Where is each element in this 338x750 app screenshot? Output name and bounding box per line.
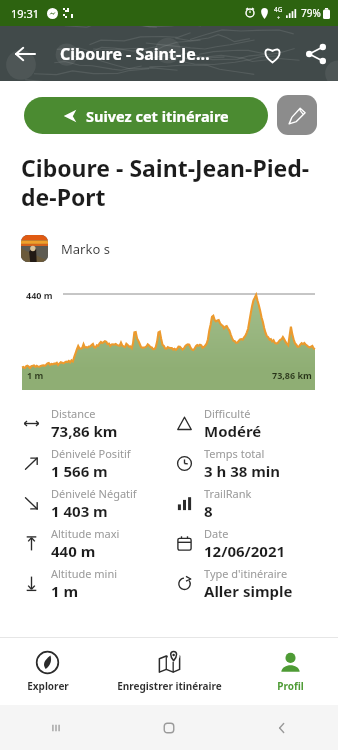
staticText: 1 m — [51, 581, 79, 601]
staticText: Marko s — [61, 240, 110, 258]
staticText: 3 h 38 min — [204, 461, 281, 481]
button[interactable]: Share — [294, 32, 338, 76]
staticText: 19:31 — [11, 6, 40, 21]
staticText: TrailRank — [204, 486, 252, 501]
staticText: 4G — [274, 5, 283, 14]
button[interactable]: Profil — [243, 638, 338, 705]
button[interactable]: Back — [0, 29, 50, 79]
staticText: Ciboure - Saint-Jean-Pied-de-Port — [21, 152, 317, 213]
staticText: Explorer — [27, 679, 69, 693]
button[interactable]: Marko s — [21, 235, 317, 262]
button[interactable]: Explorer — [0, 638, 95, 705]
staticText: Enregistrer itinéraire — [117, 679, 222, 693]
staticText: 1 566 m — [51, 461, 108, 481]
staticText: Ciboure - Saint-Je… — [60, 43, 250, 65]
staticText: 1 403 m — [51, 501, 108, 521]
staticText: Aller simple — [204, 581, 293, 601]
staticText: 12/06/2021 — [204, 541, 286, 561]
button[interactable]: Suivez cet itinéraire — [24, 97, 268, 134]
staticText: + — [277, 14, 281, 21]
button[interactable]: Home — [112, 705, 225, 750]
staticText: 440 m — [51, 541, 96, 561]
staticText: Profil — [277, 679, 304, 693]
button[interactable]: Recents — [0, 705, 112, 750]
staticText: Suivez cet itinéraire — [86, 106, 229, 126]
staticText: Date — [204, 526, 229, 541]
button[interactable]: Favorite — [250, 32, 294, 76]
staticText: 79% — [301, 6, 321, 20]
staticText: Altitude maxi — [51, 526, 120, 541]
button[interactable]: Enregistrer itinéraire — [95, 638, 243, 705]
staticText: 1 m — [27, 369, 44, 381]
staticText: Difficulté — [204, 406, 251, 421]
staticText: Temps total — [204, 446, 265, 461]
staticText: Type d'itinéraire — [204, 566, 288, 581]
staticText: 73,86 km — [272, 369, 312, 381]
button[interactable]: Edit — [277, 95, 317, 135]
staticText: Dénivelé Positif — [51, 446, 131, 461]
staticText: Distance — [51, 406, 96, 421]
staticText: 73,86 km — [51, 421, 118, 441]
staticText: 440 m — [26, 289, 53, 301]
staticText: 8 — [204, 501, 213, 521]
staticText: Dénivelé Négatif — [51, 486, 137, 501]
staticText: Altitude mini — [51, 566, 118, 581]
staticText: Modéré — [204, 421, 262, 441]
button[interactable]: Back — [225, 705, 338, 750]
